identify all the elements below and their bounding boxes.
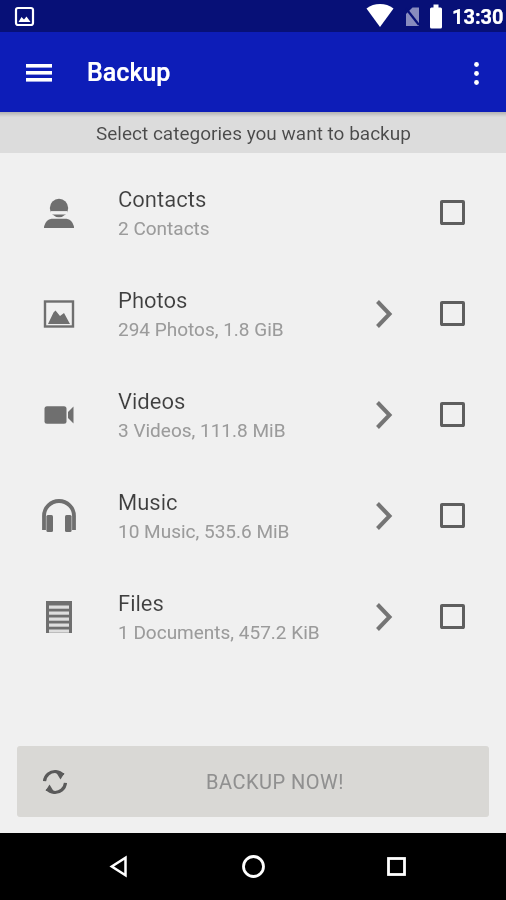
staticText: Select categories you want to backup	[96, 122, 411, 144]
staticText: 294 Photos, 1.8 GiB	[118, 318, 284, 340]
staticText: Music	[118, 490, 178, 516]
button[interactable]	[446, 32, 506, 112]
button[interactable]: Music	[0, 465, 506, 566]
button[interactable]	[440, 301, 465, 326]
staticText: 13:30	[452, 5, 504, 28]
button[interactable]: Contacts	[0, 162, 506, 263]
staticText: BACKUP NOW!	[206, 770, 344, 793]
staticText: Files	[118, 591, 164, 617]
button[interactable]: Files	[0, 566, 506, 667]
button[interactable]: Videos	[0, 364, 506, 465]
button[interactable]	[440, 503, 465, 528]
button[interactable]	[0, 32, 78, 112]
button[interactable]	[440, 200, 465, 225]
staticText: 10 Music, 535.6 MiB	[118, 520, 290, 542]
button[interactable]: BACKUP NOW!	[17, 746, 489, 817]
staticText: Contacts	[118, 187, 207, 213]
button[interactable]	[78, 833, 158, 900]
staticText: Backup	[87, 58, 171, 87]
staticText: 3 Videos, 111.8 MiB	[118, 419, 286, 441]
button[interactable]	[440, 604, 465, 629]
staticText: 1 Documents, 457.2 KiB	[118, 621, 320, 643]
button[interactable]	[440, 402, 465, 427]
button[interactable]: Photos	[0, 263, 506, 364]
staticText: Videos	[118, 389, 186, 415]
staticText: 2 Contacts	[118, 217, 210, 239]
button[interactable]	[356, 833, 436, 900]
staticText: Photos	[118, 288, 188, 314]
button[interactable]	[213, 833, 293, 900]
